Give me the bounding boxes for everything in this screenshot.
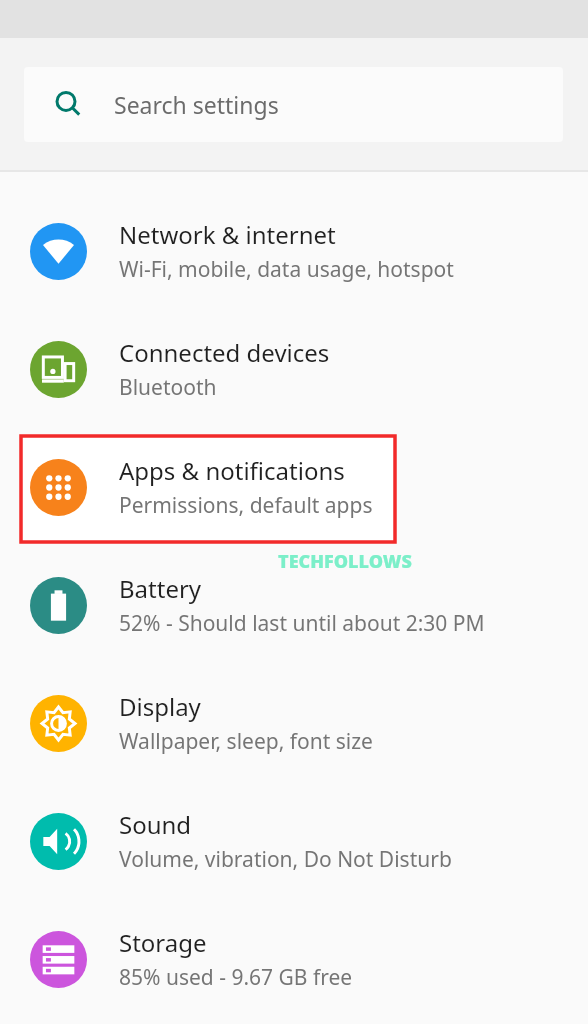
staticText: Apps & notifications <box>119 454 345 487</box>
button[interactable]: Storage <box>0 900 588 1018</box>
staticText: Permissions, default apps <box>119 491 373 520</box>
button[interactable]: Apps & notifications <box>0 428 588 546</box>
button[interactable]: Network & internet <box>0 192 588 310</box>
staticText: Wallpaper, sleep, font size <box>119 727 373 756</box>
button[interactable]: Search <box>24 67 563 142</box>
staticText: Storage <box>119 926 207 959</box>
staticText: Bluetooth <box>119 373 217 402</box>
staticText: Display <box>119 690 201 723</box>
staticText: Network & internet <box>119 218 336 251</box>
staticText: 85% used - 9.67 GB free <box>119 963 353 992</box>
staticText: Volume, vibration, Do Not Disturb <box>119 845 452 874</box>
staticText: Wi-Fi, mobile, data usage, hotspot <box>119 255 454 284</box>
staticText: Search settings <box>114 89 279 120</box>
button[interactable]: Sound <box>0 782 588 900</box>
button[interactable]: Display <box>0 664 588 782</box>
staticText: TECHFOLLOWS <box>278 549 412 574</box>
staticText: 52% - Should last until about 2:30 PM <box>119 609 485 638</box>
staticText: Battery <box>119 572 202 605</box>
staticText: Connected devices <box>119 336 330 369</box>
other: Search <box>54 90 84 120</box>
staticText: Sound <box>119 808 192 841</box>
button[interactable]: Connected devices <box>0 310 588 428</box>
button[interactable]: Battery <box>0 546 588 664</box>
